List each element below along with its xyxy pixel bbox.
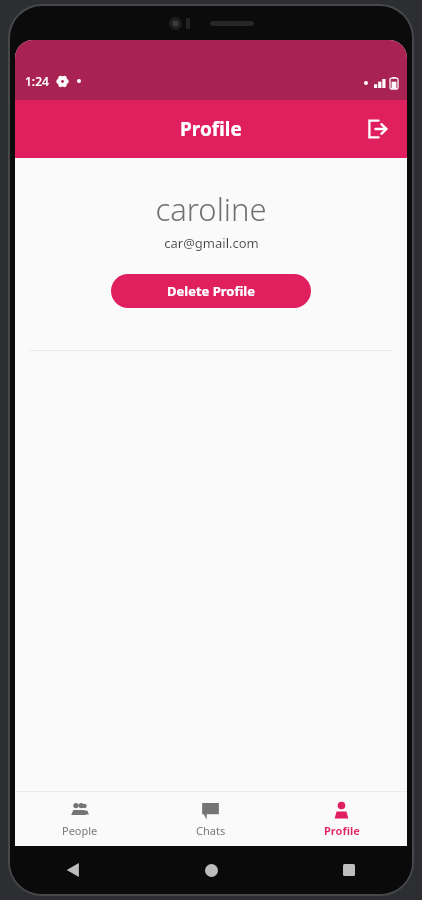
button[interactable]: People xyxy=(15,794,145,844)
staticText: Profile xyxy=(324,823,360,838)
staticText: 1:24 xyxy=(25,73,49,89)
staticText: Profile xyxy=(180,116,242,142)
staticText: caroline xyxy=(155,188,267,230)
staticText: Delete Profile xyxy=(167,282,255,300)
button[interactable]: Log out xyxy=(357,109,397,149)
staticText: Chats xyxy=(196,823,226,838)
button[interactable]: Home xyxy=(198,857,224,883)
button[interactable]: Profile xyxy=(276,795,407,844)
staticText: car@gmail.com xyxy=(164,234,259,252)
button[interactable]: Recent apps xyxy=(336,857,362,883)
staticText: People xyxy=(62,823,98,838)
button[interactable]: Chats xyxy=(145,795,276,844)
button[interactable]: Back xyxy=(60,857,86,883)
button[interactable]: Delete Profile xyxy=(111,274,311,308)
